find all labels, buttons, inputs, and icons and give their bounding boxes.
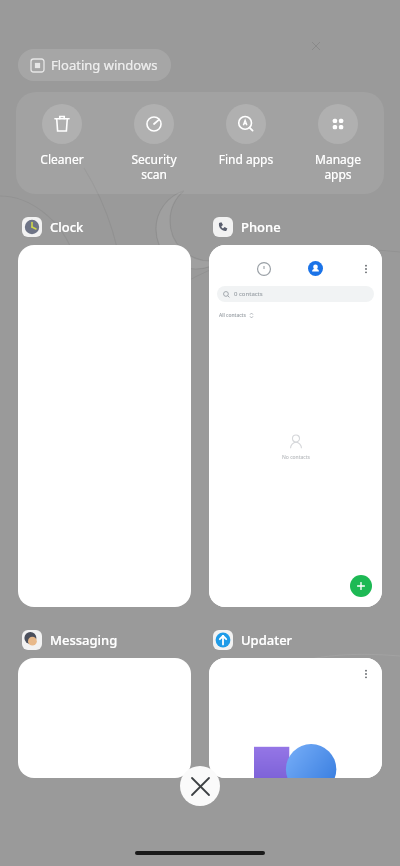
- button[interactable]: Find apps: [200, 104, 292, 167]
- button[interactable]: Phone: [213, 217, 281, 237]
- button[interactable]: [18, 245, 191, 607]
- button[interactable]: Floating windows: [18, 49, 171, 81]
- staticText: Clock: [50, 218, 84, 236]
- button[interactable]: Add contact: [350, 575, 372, 597]
- staticText: 0 contacts: [234, 290, 263, 298]
- staticText: Floating windows: [51, 56, 158, 74]
- staticText: Updater: [241, 631, 293, 649]
- staticText: No contacts: [282, 454, 310, 461]
- button[interactable]: Close all: [180, 766, 220, 806]
- button[interactable]: Cleaner: [16, 104, 108, 167]
- button[interactable]: [18, 658, 191, 778]
- staticText: Cleaner: [16, 151, 108, 167]
- button[interactable]: Manage apps: [292, 104, 384, 182]
- staticText: Security scan: [108, 151, 200, 182]
- staticText: Messaging: [50, 631, 118, 649]
- button[interactable]: 0 contacts: [209, 245, 382, 607]
- button[interactable]: Updater: [213, 630, 293, 650]
- staticText: All contacts: [219, 312, 246, 319]
- button[interactable]: [209, 658, 382, 778]
- button[interactable]: Clock: [22, 217, 84, 237]
- staticText: Manage apps: [292, 151, 384, 182]
- button[interactable]: Security scan: [108, 104, 200, 182]
- button[interactable]: Messaging: [22, 630, 118, 650]
- staticText: Phone: [241, 218, 281, 236]
- staticText: Find apps: [200, 151, 292, 167]
